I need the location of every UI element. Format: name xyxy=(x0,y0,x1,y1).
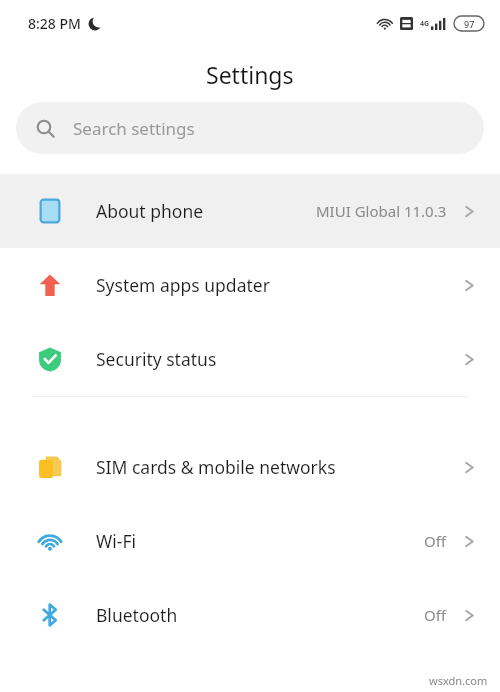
button[interactable]: SIM cards & mobile networks xyxy=(0,430,500,504)
staticText: 97 xyxy=(464,18,475,30)
button[interactable]: Bluetooth xyxy=(0,578,500,652)
staticText: SIM cards & mobile networks xyxy=(96,455,461,479)
staticText: Wi-Fi xyxy=(96,529,424,553)
staticText: 4G xyxy=(420,19,430,29)
staticText: Off xyxy=(424,605,447,625)
button[interactable]: System apps updater xyxy=(0,248,500,322)
staticText: About phone xyxy=(96,199,316,223)
button[interactable]: About phone xyxy=(0,174,500,248)
staticText: wsxdn.com xyxy=(429,673,488,688)
staticText: Security status xyxy=(96,347,461,371)
staticText: Off xyxy=(424,531,447,551)
staticText: Settings xyxy=(206,59,294,90)
staticText: System apps updater xyxy=(96,273,461,297)
button[interactable]: Security status xyxy=(0,322,500,396)
staticText: Bluetooth xyxy=(96,603,424,627)
staticText: MIUI Global 11.0.3 xyxy=(316,201,447,221)
button[interactable]: Wi-Fi xyxy=(0,504,500,578)
staticText: 8:28 PM xyxy=(28,14,81,33)
staticText: Search settings xyxy=(73,117,195,140)
button[interactable]: Search settings xyxy=(16,102,484,154)
